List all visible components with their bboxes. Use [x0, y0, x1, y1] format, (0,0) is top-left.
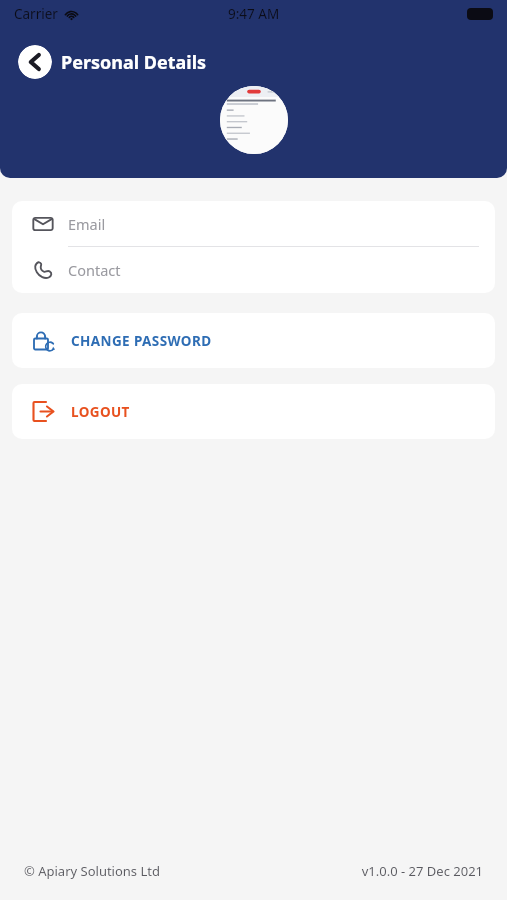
staticText: 9:47 AM [228, 5, 280, 23]
button[interactable]: Profile photo [220, 86, 288, 154]
button[interactable]: Change password [12, 313, 495, 368]
button[interactable]: Back [18, 45, 52, 79]
staticText: Personal Details [61, 50, 207, 75]
staticText: Contact [68, 260, 121, 280]
staticText: © Apiary Solutions Ltd [24, 862, 160, 880]
staticText: Carrier [14, 5, 58, 23]
staticText: v1.0.0 - 27 Dec 2021 [361, 862, 483, 880]
staticText: Email [68, 214, 106, 234]
button[interactable]: Contact [12, 247, 495, 292]
button[interactable]: Email [12, 201, 495, 246]
button[interactable]: Logout [12, 384, 495, 439]
staticText: LOGOUT [71, 403, 130, 421]
staticText: CHANGE PASSWORD [71, 332, 212, 350]
